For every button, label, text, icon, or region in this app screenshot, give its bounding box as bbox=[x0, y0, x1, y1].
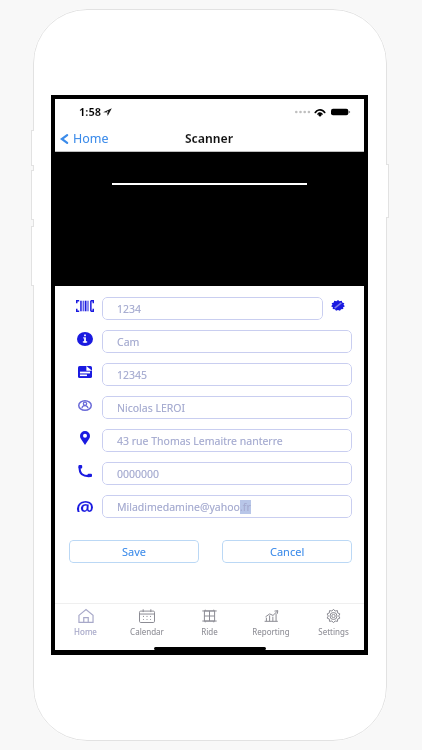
button[interactable]: Home bbox=[55, 127, 115, 150]
button[interactable]: Cancel bbox=[222, 540, 352, 563]
button[interactable]: 0000000 bbox=[102, 462, 352, 485]
staticText: 1:58 bbox=[79, 104, 101, 119]
staticText: Home bbox=[73, 130, 109, 147]
staticText: Settings bbox=[318, 626, 349, 637]
staticText: Nicolas LEROI bbox=[117, 401, 186, 415]
staticText: @ bbox=[76, 494, 94, 512]
button[interactable]: Home bbox=[55, 605, 116, 640]
button[interactable]: Cam bbox=[102, 330, 352, 353]
button[interactable]: Save bbox=[69, 540, 199, 563]
button[interactable]: 12345 bbox=[102, 363, 352, 386]
staticText: Calendar bbox=[130, 626, 164, 637]
button[interactable]: Nicolas LEROI bbox=[102, 396, 352, 419]
staticText: Home bbox=[74, 626, 97, 637]
staticText: 43 rue Thomas Lemaitre nanterre bbox=[117, 434, 283, 448]
button[interactable]: Reporting bbox=[240, 605, 302, 640]
staticText: Cam bbox=[117, 335, 140, 349]
staticText: 1234 bbox=[117, 302, 142, 316]
button[interactable]: Ride bbox=[178, 605, 240, 640]
staticText: 0000000 bbox=[117, 467, 160, 481]
staticText: Reporting bbox=[252, 626, 290, 637]
button[interactable]: Miladimedamine@yahoo bbox=[102, 495, 352, 518]
staticText: Save bbox=[122, 544, 147, 559]
button[interactable]: 43 rue Thomas Lemaitre nanterre bbox=[102, 429, 352, 452]
staticText: Miladimedamine@yahoo bbox=[117, 500, 240, 514]
button[interactable]: 1234 bbox=[102, 297, 323, 320]
staticText: 12345 bbox=[117, 368, 148, 382]
staticText: Cancel bbox=[270, 544, 305, 559]
button[interactable]: Calendar bbox=[116, 605, 178, 640]
staticText: .fr bbox=[240, 500, 251, 514]
button[interactable]: Settings bbox=[302, 605, 364, 640]
button[interactable]: Settings bbox=[330, 297, 346, 313]
staticText: Scanner bbox=[185, 130, 234, 146]
staticText: Ride bbox=[201, 626, 218, 637]
